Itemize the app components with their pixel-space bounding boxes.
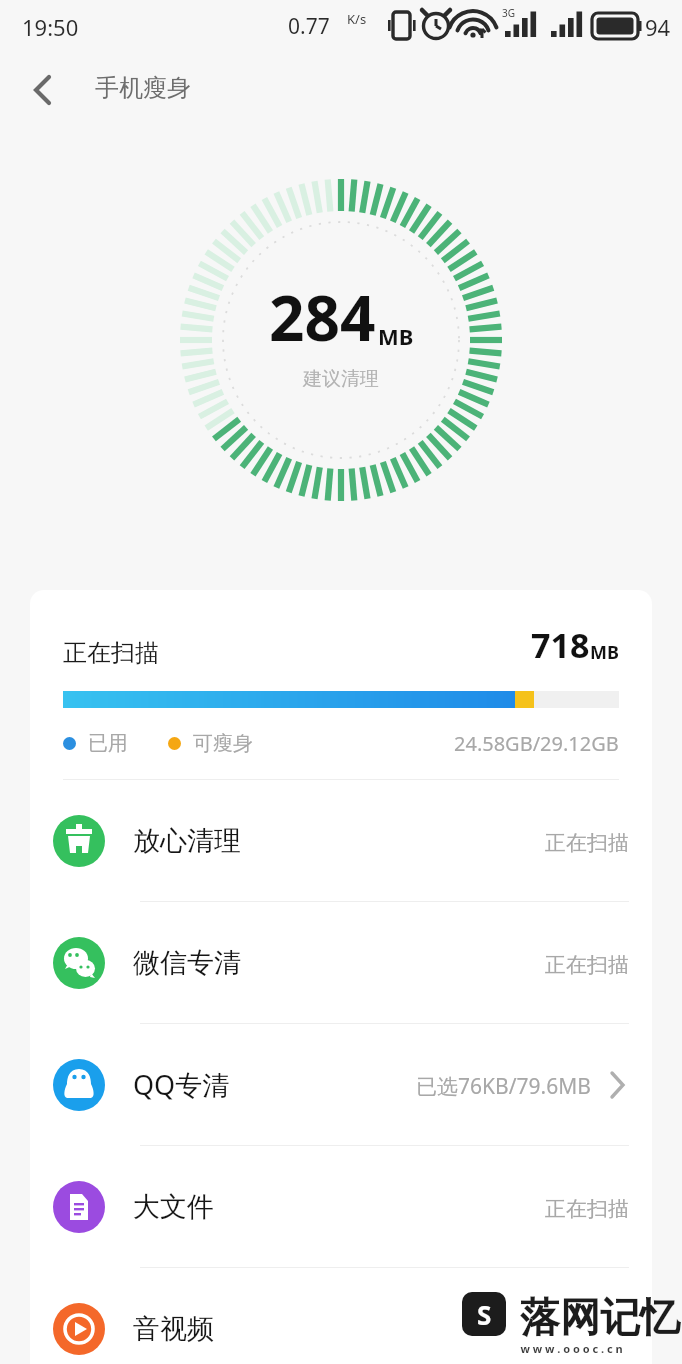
staticText: 正在扫描 — [63, 638, 159, 668]
staticText: 正在扫描 — [545, 1196, 629, 1222]
staticText: 音视频 — [133, 1312, 214, 1346]
staticText: 手机瘦身 — [95, 73, 191, 103]
staticText: MB — [378, 321, 414, 351]
staticText: K/s — [347, 10, 367, 28]
staticText: 大文件 — [133, 1190, 214, 1224]
staticText: 19:50 — [22, 12, 79, 42]
button[interactable]: 微信专清 — [30, 902, 652, 1023]
staticText: 放心清理 — [133, 824, 241, 858]
staticText: 微信专清 — [133, 946, 241, 980]
staticText: 718 — [531, 622, 590, 668]
staticText: 已用 — [88, 731, 128, 756]
staticText: MB — [590, 640, 619, 665]
staticText: QQ专清 — [133, 1066, 230, 1103]
staticText: 正在扫描 — [545, 952, 629, 978]
staticText: 3G — [502, 6, 515, 20]
staticText: 0.77 — [288, 12, 330, 41]
staticText: 284 — [269, 275, 376, 359]
staticText: 可瘦身 — [193, 731, 253, 756]
staticText: 94 — [645, 12, 671, 42]
staticText: 正在扫描 — [545, 830, 629, 856]
button[interactable]: 放心清理 — [30, 780, 652, 901]
button[interactable]: QQ专清 — [30, 1024, 652, 1145]
staticText: 已选76KB/79.6MB — [416, 1072, 591, 1101]
button[interactable]: Back — [14, 62, 70, 118]
button[interactable]: 音视频 — [30, 1268, 652, 1364]
staticText: 建议清理 — [303, 367, 379, 391]
staticText: 24.58GB/29.12GB — [454, 730, 619, 757]
staticText: 落网记忆 — [520, 1292, 680, 1342]
button[interactable]: 大文件 — [30, 1146, 652, 1267]
staticText: w w w . o o o c . c n — [520, 1341, 623, 1356]
staticText: S — [477, 1297, 492, 1332]
